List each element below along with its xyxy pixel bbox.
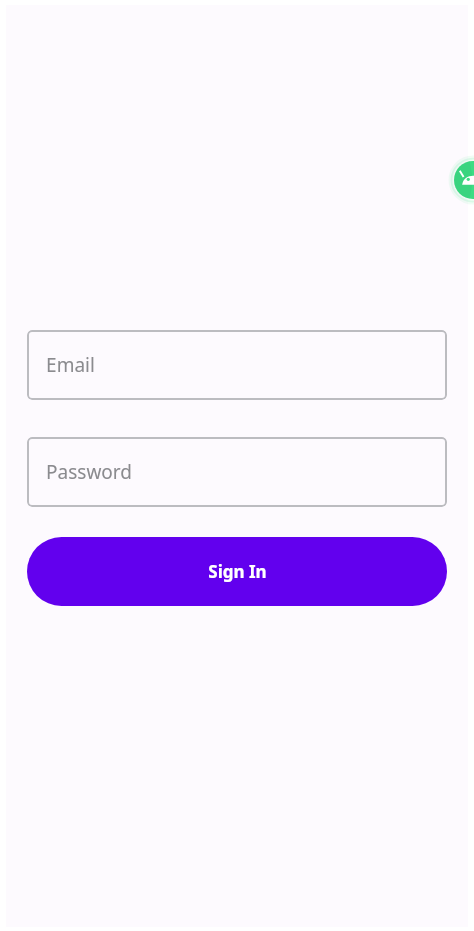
button[interactable]: Password	[27, 437, 447, 507]
staticText: Email	[46, 352, 95, 378]
button[interactable]: Sign In	[27, 537, 447, 606]
button[interactable]: Email	[27, 330, 447, 400]
other: App logo	[448, 155, 474, 205]
staticText: Sign In	[208, 560, 267, 583]
staticText: Password	[46, 459, 132, 485]
